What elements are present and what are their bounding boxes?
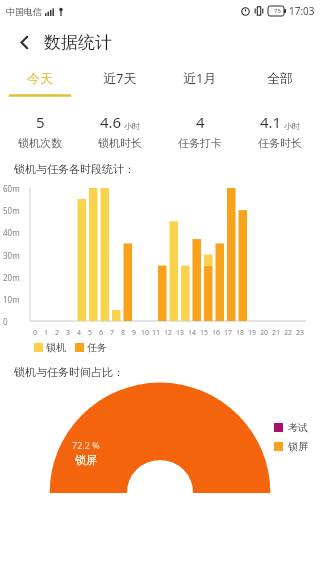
staticText: 4.6	[100, 112, 122, 132]
staticText: 14	[188, 328, 197, 338]
staticText: 7	[110, 328, 115, 338]
staticText: 12	[164, 328, 173, 338]
staticText: 2	[55, 328, 60, 338]
staticText: 40m	[3, 227, 20, 238]
staticText: 锁屏	[288, 440, 308, 453]
staticText: 30m	[3, 250, 20, 261]
staticText: 4.1	[260, 112, 282, 132]
staticText: 锁屏	[75, 453, 97, 467]
staticText: 3	[66, 328, 71, 338]
staticText: 0	[3, 316, 8, 327]
staticText: 72.2 %	[72, 439, 100, 451]
staticText: 4	[77, 328, 82, 338]
staticText: 锁机次数	[18, 136, 62, 150]
staticText: 17	[224, 328, 233, 338]
staticText: 任务打卡	[178, 136, 222, 150]
staticText: 6	[99, 328, 104, 338]
staticText: 18	[236, 328, 245, 338]
staticText: 考试	[288, 421, 308, 434]
staticText: 19	[248, 328, 257, 338]
staticText: 任务	[87, 341, 107, 354]
button[interactable]: 近7天	[80, 62, 160, 94]
staticText: 5	[36, 112, 45, 132]
staticText: 20m	[3, 272, 20, 283]
button[interactable]: 5	[0, 112, 80, 150]
staticText: 近1月	[183, 69, 217, 87]
staticText: 75	[274, 7, 281, 15]
staticText: 50m	[3, 205, 20, 216]
staticText: 20	[260, 328, 269, 338]
staticText: 锁机时长	[98, 136, 142, 150]
button[interactable]: 4	[160, 112, 240, 150]
staticText: 23	[296, 328, 305, 338]
staticText: 15	[200, 328, 209, 338]
staticText: 5	[88, 328, 93, 338]
button[interactable]: 今天	[0, 62, 80, 94]
button[interactable]: 4.1	[240, 112, 320, 150]
staticText: 锁机与任务时间占比：	[14, 365, 124, 379]
staticText: 17:03	[289, 4, 315, 18]
button[interactable]: 近1月	[160, 62, 240, 94]
staticText: 锁机	[46, 341, 66, 354]
staticText: 今天	[27, 70, 53, 86]
staticText: 60m	[3, 183, 20, 194]
staticText: 16	[212, 328, 221, 338]
staticText: 数据统计	[44, 32, 112, 53]
button[interactable]: 4.6	[80, 112, 160, 150]
staticText: 11	[152, 328, 161, 338]
staticText: 13	[176, 328, 185, 338]
staticText: 小时	[284, 121, 300, 131]
staticText: 任务时长	[258, 136, 302, 150]
staticText: 中国电信	[6, 6, 42, 17]
button[interactable]: Back	[10, 28, 38, 56]
staticText: 22	[284, 328, 293, 338]
staticText: 8	[121, 328, 126, 338]
staticText: 21	[272, 328, 281, 338]
staticText: 1	[44, 328, 49, 338]
staticText: 10m	[3, 294, 20, 305]
staticText: 全部	[267, 70, 293, 86]
staticText: 0	[33, 328, 38, 338]
button[interactable]: 全部	[240, 62, 320, 94]
staticText: 9	[132, 328, 137, 338]
staticText: 近7天	[103, 69, 137, 87]
staticText: 小时	[124, 121, 140, 131]
staticText: 10	[141, 328, 150, 338]
staticText: 锁机与任务各时段统计：	[14, 162, 135, 176]
staticText: 4	[196, 112, 205, 132]
